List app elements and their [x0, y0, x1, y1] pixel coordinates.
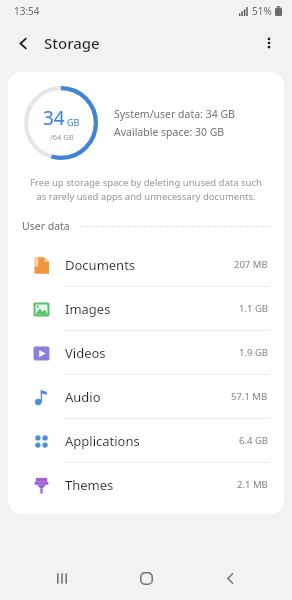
staticText: 2.1 MB [237, 478, 268, 491]
button[interactable]: More options [252, 26, 286, 60]
staticText: Storage [44, 33, 100, 53]
staticText: GB [67, 116, 80, 128]
button[interactable]: Back [208, 556, 252, 600]
staticText: Documents [65, 256, 234, 274]
staticText: Free up storage space by deleting unused… [26, 176, 266, 203]
staticText: 6.4 GB [239, 434, 268, 447]
button[interactable]: Home [124, 556, 168, 600]
staticText: 13:54 [14, 4, 40, 18]
button[interactable]: Recents [40, 556, 84, 600]
button[interactable]: Back [6, 26, 40, 60]
staticText: 57.1 MB [231, 390, 268, 403]
staticText: 34 [43, 105, 65, 131]
button[interactable]: Videos [8, 331, 284, 374]
button[interactable]: Applications [8, 419, 284, 462]
staticText: 1.9 GB [239, 346, 268, 359]
button[interactable]: Audio [8, 375, 284, 418]
staticText: Videos [65, 344, 239, 362]
staticText: 1.1 GB [239, 302, 268, 315]
staticText: System/user data: 34 GB [114, 107, 235, 121]
button[interactable]: Themes [8, 463, 284, 506]
staticText: Images [65, 300, 239, 318]
staticText: Available space: 30 GB [114, 125, 225, 139]
staticText: Audio [65, 388, 231, 406]
staticText: /64 GB [50, 132, 74, 142]
staticText: 207 MB [234, 258, 268, 271]
button[interactable]: Documents [8, 243, 284, 286]
staticText: Applications [65, 432, 239, 450]
staticText: 51% [252, 4, 272, 18]
staticText: Themes [65, 476, 237, 494]
staticText: User data [22, 219, 70, 233]
button[interactable]: Images [8, 287, 284, 330]
